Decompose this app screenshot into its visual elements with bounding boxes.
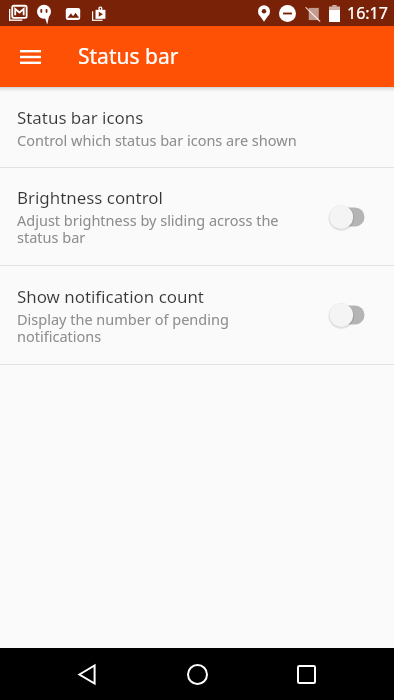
staticText: Control which status bar icons are shown (17, 130, 297, 150)
button[interactable]: Back (55, 648, 119, 700)
staticText: Status bar icons (17, 106, 144, 129)
button[interactable]: Recent apps (274, 648, 338, 700)
button[interactable]: Brightness control (0, 168, 394, 265)
staticText: Brightness control (17, 186, 163, 209)
button[interactable]: Show notification count (0, 266, 394, 364)
staticText: Status bar (78, 42, 179, 71)
button[interactable]: Toggle, off (330, 298, 378, 332)
button[interactable]: Toggle, off (330, 200, 378, 234)
button[interactable]: Open navigation drawer (6, 33, 54, 81)
button[interactable]: Home (165, 648, 229, 700)
button[interactable]: Status bar icons (0, 92, 394, 167)
staticText: Display the number of pending notificati… (17, 309, 229, 346)
staticText: Adjust brightness by sliding across the … (17, 210, 279, 247)
staticText: Show notification count (17, 285, 204, 308)
staticText: 16:17 (347, 2, 388, 24)
